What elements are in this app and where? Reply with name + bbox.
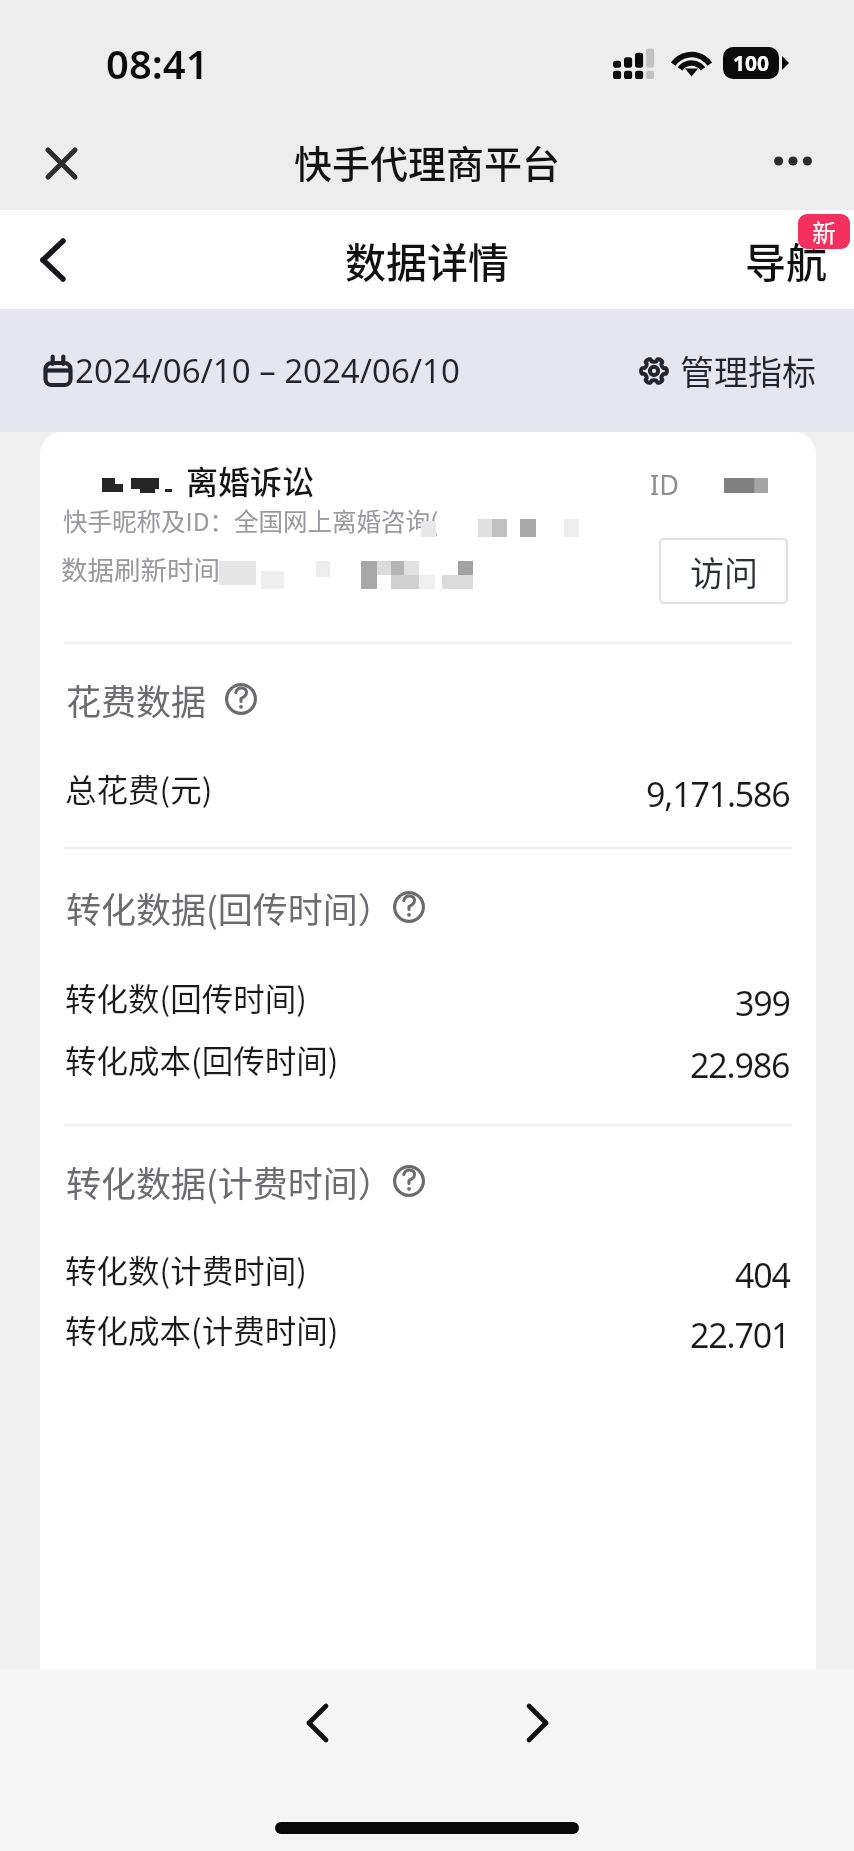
staticText: 花费数据 (66, 674, 207, 725)
button[interactable]: 导航 (745, 230, 827, 289)
button[interactable]: 访问 (659, 538, 788, 604)
staticText: 快手代理商平台 (294, 134, 561, 189)
staticText: 转化成本(回传时间) (65, 1036, 339, 1082)
staticText: 访问 (690, 547, 758, 596)
button[interactable]: Forward (493, 1679, 581, 1767)
staticText: 22.701 (690, 1312, 790, 1358)
staticText: 2024/06/10 – 2024/06/10 (75, 348, 460, 393)
button[interactable]: 管理指标 (639, 346, 816, 395)
button[interactable]: Close (28, 130, 94, 196)
staticText: 管理指标 (680, 346, 816, 395)
staticText: 9,171.586 (646, 771, 790, 817)
staticText: ID (650, 466, 679, 503)
button[interactable]: Back (273, 1679, 361, 1767)
staticText: 总花费(元) (65, 765, 213, 811)
staticText: 转化数据(计费时间） (66, 1156, 393, 1207)
staticText: 快手昵称及ID：全国网上离婚咨询( (63, 503, 439, 538)
staticText: 22.986 (690, 1042, 790, 1088)
staticText: 404 (735, 1252, 790, 1298)
staticText: 转化数(计费时间) (65, 1246, 307, 1292)
staticText: 导航 (745, 230, 827, 289)
staticText: 数据刷新时间： (61, 549, 247, 587)
staticText: 新 (812, 214, 836, 249)
staticText: 转化数据(回传时间） (66, 882, 393, 933)
staticText: 转化成本(计费时间) (65, 1306, 339, 1352)
button[interactable]: Back (17, 224, 89, 296)
staticText: 100 (733, 49, 770, 78)
button[interactable]: 2024/06/10 – 2024/06/10 (44, 348, 460, 393)
staticText: 离婚诉讼 (186, 457, 315, 503)
staticText: 转化数(回传时间) (65, 974, 307, 1020)
staticText: 399 (735, 980, 790, 1026)
staticText: 数据详情 (345, 230, 509, 289)
button[interactable]: More options (760, 128, 826, 194)
staticText: 08:41 (106, 36, 209, 90)
